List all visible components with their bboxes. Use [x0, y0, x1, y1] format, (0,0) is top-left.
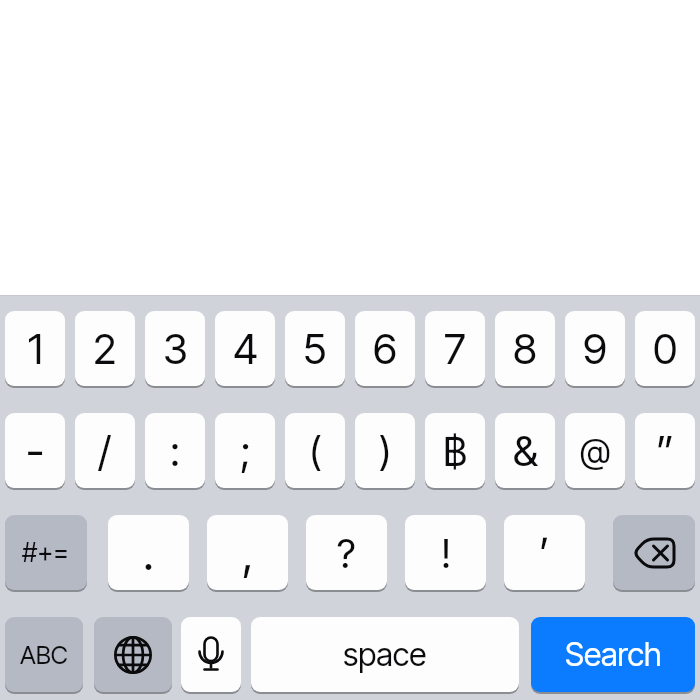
staticText: @ — [580, 430, 611, 471]
staticText: 6 — [373, 323, 397, 374]
staticText: 8 — [513, 323, 537, 374]
button[interactable]: 7 — [425, 311, 485, 386]
button[interactable]: / — [75, 413, 135, 488]
staticText: ! — [441, 529, 451, 577]
button[interactable]: ฿ — [425, 413, 485, 488]
button[interactable]: 8 — [495, 311, 555, 386]
button[interactable]: @ — [565, 413, 625, 488]
staticText: ” — [656, 425, 675, 476]
button[interactable]: 6 — [355, 311, 415, 386]
button[interactable]: ! — [405, 515, 486, 590]
button[interactable]: , — [207, 515, 288, 590]
button[interactable]: 9 — [565, 311, 625, 386]
button[interactable]: ( — [285, 413, 345, 488]
staticText: 1 — [28, 323, 43, 374]
staticText: 7 — [444, 323, 466, 374]
staticText: Search — [565, 635, 662, 674]
button[interactable]: - — [5, 413, 65, 488]
button[interactable]: ” — [635, 413, 695, 488]
button[interactable]: : — [145, 413, 205, 488]
staticText: : — [170, 425, 180, 476]
staticText: ฿ — [443, 427, 468, 475]
button[interactable]: & — [495, 413, 555, 488]
staticText: 5 — [303, 323, 327, 374]
button[interactable]: space — [251, 617, 519, 692]
button[interactable]: ’ — [504, 515, 585, 590]
button[interactable]: . — [108, 515, 189, 590]
staticText: ; — [240, 425, 251, 476]
button[interactable]: 2 — [75, 311, 135, 386]
staticText: 9 — [583, 323, 607, 374]
staticText: ( — [309, 427, 322, 475]
staticText: ) — [379, 427, 392, 475]
button[interactable]: ) — [355, 413, 415, 488]
staticText: ABC — [20, 640, 68, 670]
staticText: 2 — [93, 323, 117, 374]
staticText: & — [513, 425, 538, 476]
button[interactable]: ABC — [5, 617, 83, 692]
staticText: 4 — [233, 323, 258, 374]
button[interactable]: 1 — [5, 311, 65, 386]
staticText: , — [242, 525, 254, 581]
button[interactable] — [94, 617, 172, 692]
button[interactable]: 3 — [145, 311, 205, 386]
button[interactable]: 0 — [635, 311, 695, 386]
button[interactable]: 4 — [215, 311, 275, 386]
button[interactable] — [181, 617, 241, 692]
staticText: #+= — [22, 537, 70, 568]
staticText: 0 — [653, 323, 678, 374]
button[interactable]: 5 — [285, 311, 345, 386]
staticText: 3 — [163, 323, 188, 374]
button[interactable]: ? — [306, 515, 387, 590]
staticText: - — [26, 424, 45, 477]
staticText: / — [98, 425, 112, 476]
staticText: ’ — [539, 527, 550, 578]
button[interactable]: #+= — [5, 515, 87, 590]
staticText: . — [143, 525, 154, 581]
staticText: ? — [337, 529, 356, 577]
button[interactable]: Search — [531, 617, 695, 692]
button[interactable] — [613, 515, 695, 590]
button[interactable]: ; — [215, 413, 275, 488]
staticText: space — [343, 635, 427, 674]
